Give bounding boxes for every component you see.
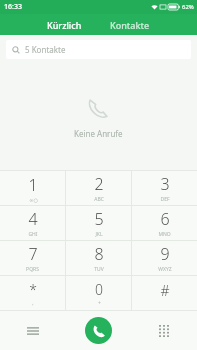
button[interactable]: Kürzlich <box>37 16 92 34</box>
staticText: Kürzlich <box>47 19 82 31</box>
button[interactable]: 0 <box>66 276 131 310</box>
staticText: WXYZ <box>158 266 172 273</box>
button[interactable]: 6 <box>132 206 197 240</box>
button[interactable]: 8 <box>66 241 131 275</box>
button[interactable]: # <box>132 276 197 310</box>
staticText: 1 <box>28 174 38 196</box>
button[interactable]: 9 <box>132 241 197 275</box>
staticText: 5 Kontakte <box>25 44 66 55</box>
staticText: JKL <box>95 231 103 238</box>
staticText: PQRS <box>26 266 39 273</box>
button[interactable]: 7 <box>0 241 65 275</box>
staticText: , <box>32 300 34 307</box>
button[interactable]: Call <box>85 317 112 344</box>
staticText: * <box>29 280 37 299</box>
button[interactable]: 4 <box>0 206 65 240</box>
button[interactable]: 2 <box>66 171 131 205</box>
staticText: # <box>160 281 170 300</box>
button[interactable]: 5 <box>66 206 131 240</box>
staticText: 2 <box>94 173 104 195</box>
button[interactable]: * <box>0 276 65 310</box>
staticText: 16:33 <box>4 2 22 12</box>
staticText: 9 <box>160 243 170 265</box>
staticText: 5 <box>94 208 104 230</box>
button[interactable]: Dialpad <box>131 311 197 350</box>
staticText: DEF <box>160 196 170 203</box>
staticText: 62% <box>182 3 194 11</box>
button[interactable]: 1 <box>0 171 65 205</box>
staticText: TUV <box>94 266 104 273</box>
staticText: Kontakte <box>110 19 150 31</box>
staticText: ABC <box>94 196 104 203</box>
staticText: GHI <box>28 231 38 238</box>
staticText: Keine Anrufe <box>74 128 123 139</box>
button[interactable]: Menu <box>0 311 65 350</box>
staticText: 3 <box>160 173 170 195</box>
staticText: 8 <box>94 243 104 265</box>
staticText: 0 <box>95 280 103 299</box>
button[interactable]: Kontakte <box>100 16 160 34</box>
staticText: 4 <box>28 208 38 230</box>
staticText: + <box>98 300 101 307</box>
button[interactable]: 5 Kontakte <box>6 40 191 59</box>
staticText: 7 <box>28 243 38 265</box>
staticText: MNO <box>158 231 171 238</box>
staticText: 6 <box>160 208 170 230</box>
staticText: ∞○ <box>29 197 38 203</box>
button[interactable]: 3 <box>132 171 197 205</box>
